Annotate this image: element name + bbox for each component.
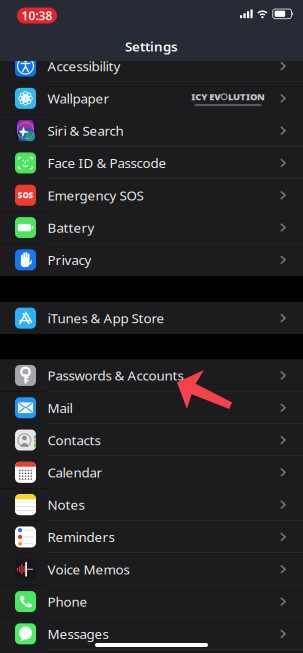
- button[interactable]: Privacy: [0, 244, 303, 276]
- button[interactable]: Phone: [0, 585, 303, 618]
- button[interactable]: Wallpaper: [0, 82, 303, 114]
- staticText: Passwords & Accounts: [47, 367, 183, 384]
- staticText: Wallpaper: [47, 89, 109, 107]
- button[interactable]: iTunes & App Store: [0, 302, 303, 334]
- button[interactable]: Contacts: [0, 424, 303, 456]
- button[interactable]: Voice Memos: [0, 553, 303, 585]
- staticText: Emergency SOS: [47, 186, 143, 204]
- staticText: Siri & Search: [47, 122, 123, 139]
- staticText: Contacts: [47, 431, 100, 449]
- staticText: Mail: [47, 399, 72, 417]
- staticText: ICY EV: [191, 91, 220, 103]
- staticText: iTunes & App Store: [47, 309, 164, 327]
- staticText: Phone: [47, 593, 87, 610]
- button[interactable]: Mail: [0, 392, 303, 424]
- button[interactable]: Calendar: [0, 456, 303, 488]
- staticText: Privacy: [47, 251, 91, 269]
- button[interactable]: Passwords & Accounts: [0, 359, 303, 392]
- button[interactable]: Siri & Search: [0, 114, 303, 147]
- button[interactable]: Messages: [0, 618, 303, 650]
- staticText: Settings: [125, 37, 178, 55]
- staticText: Face ID & Passcode: [47, 154, 166, 172]
- staticText: Accessibility: [47, 57, 120, 75]
- staticText: Messages: [47, 625, 108, 643]
- staticText: Voice Memos: [47, 560, 129, 578]
- staticText: LUTION: [228, 91, 265, 103]
- button[interactable]: Screen recording, 10:38: [17, 7, 57, 23]
- button[interactable]: Notes: [0, 488, 303, 521]
- staticText: SOS: [17, 190, 33, 200]
- button[interactable]: SOS: [0, 179, 303, 211]
- button[interactable]: Battery: [0, 211, 303, 244]
- button[interactable]: Accessibility: [0, 50, 303, 82]
- staticText: Notes: [47, 496, 84, 513]
- button[interactable]: Reminders: [0, 521, 303, 553]
- staticText: 10:38: [21, 7, 52, 23]
- button[interactable]: Face ID & Passcode: [0, 147, 303, 179]
- staticText: Calendar: [47, 463, 102, 481]
- staticText: Battery: [47, 219, 94, 236]
- staticText: Reminders: [47, 528, 114, 546]
